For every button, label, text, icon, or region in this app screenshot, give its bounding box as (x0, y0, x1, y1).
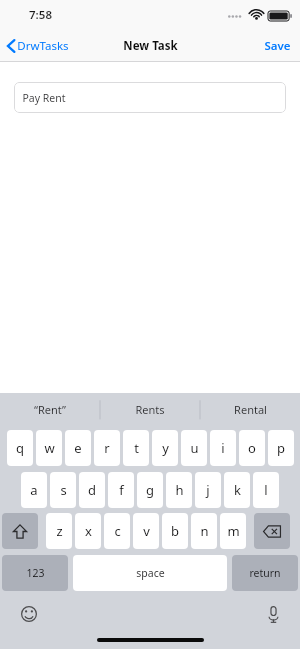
staticText: n (200, 522, 209, 540)
button[interactable]: “Rent” (0, 393, 100, 426)
button[interactable]: f (108, 472, 134, 508)
staticText: New Task (123, 38, 178, 54)
staticText: h (175, 481, 184, 499)
staticText: f (119, 481, 124, 499)
button[interactable]: k (224, 472, 250, 508)
button[interactable]: e (65, 430, 91, 466)
button[interactable]: Rents (100, 393, 200, 426)
staticText: space (136, 566, 165, 580)
button[interactable]: x (75, 513, 101, 549)
button[interactable]: Emoji (14, 599, 44, 629)
staticText: p (277, 439, 285, 457)
staticText: return (249, 566, 281, 580)
button[interactable]: return (232, 555, 298, 591)
button[interactable]: n (191, 513, 217, 549)
button[interactable]: o (239, 430, 265, 466)
staticText: j (206, 481, 210, 499)
staticText: o (248, 439, 256, 457)
staticText: q (16, 439, 24, 457)
button[interactable]: y (152, 430, 178, 466)
button[interactable]: a (21, 472, 47, 508)
button[interactable]: Dictation (258, 599, 288, 629)
button[interactable]: DrwTasks (7, 30, 69, 62)
staticText: x (85, 522, 92, 540)
staticText: z (56, 522, 63, 540)
button[interactable]: l (253, 472, 279, 508)
staticText: DrwTasks (17, 38, 69, 54)
button[interactable]: i (210, 430, 236, 466)
staticText: b (171, 522, 179, 540)
button[interactable]: 123 (2, 555, 68, 591)
button[interactable]: b (162, 513, 188, 549)
staticText: t (134, 439, 139, 457)
staticText: w (44, 439, 55, 457)
staticText: v (143, 522, 150, 540)
staticText: Rental (234, 402, 267, 417)
staticText: Rents (135, 402, 165, 417)
staticText: d (88, 481, 96, 499)
button[interactable]: z (46, 513, 72, 549)
button[interactable]: m (220, 513, 246, 549)
button[interactable]: q (7, 430, 33, 466)
button[interactable]: j (195, 472, 221, 508)
staticText: r (104, 439, 110, 457)
button[interactable]: Shift (2, 513, 38, 549)
button[interactable]: c (104, 513, 130, 549)
staticText: m (227, 522, 240, 540)
staticText: k (234, 481, 241, 499)
button[interactable]: t (123, 430, 149, 466)
button[interactable]: u (181, 430, 207, 466)
staticText: g (146, 481, 154, 499)
staticText: 7:58 (29, 7, 52, 23)
button[interactable]: space (73, 555, 227, 591)
button[interactable]: Pay Rent (14, 82, 286, 113)
button[interactable]: Rental (200, 393, 300, 426)
button[interactable]: v (133, 513, 159, 549)
button[interactable]: p (268, 430, 294, 466)
staticText: “Rent” (34, 402, 66, 417)
staticText: c (114, 522, 121, 540)
button[interactable]: d (79, 472, 105, 508)
staticText: 123 (26, 566, 45, 580)
button[interactable]: r (94, 430, 120, 466)
button[interactable]: g (137, 472, 163, 508)
staticText: a (30, 481, 38, 499)
staticText: s (60, 481, 67, 499)
button[interactable]: Backspace (254, 513, 290, 549)
staticText: y (162, 439, 169, 457)
staticText: Pay Rent (22, 91, 66, 105)
staticText: l (264, 481, 268, 499)
button[interactable]: w (36, 430, 62, 466)
button[interactable]: Save (264, 30, 291, 62)
button[interactable]: s (50, 472, 76, 508)
staticText: Save (264, 38, 291, 54)
staticText: u (190, 439, 199, 457)
button[interactable]: h (166, 472, 192, 508)
staticText: i (221, 439, 225, 457)
staticText: e (74, 439, 82, 457)
